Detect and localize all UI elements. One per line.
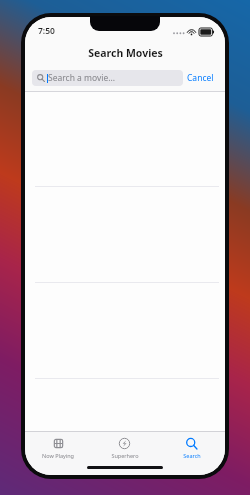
staticText: 7:50 xyxy=(38,25,55,37)
button[interactable]: Superhero xyxy=(91,432,158,463)
staticText: Search xyxy=(183,452,201,459)
staticText: Cancel xyxy=(187,72,214,84)
staticText: Search a movie... xyxy=(48,72,116,84)
staticText: Superhero xyxy=(111,452,139,459)
button[interactable]: Now Playing xyxy=(25,432,91,463)
staticText: Now Playing xyxy=(42,452,74,459)
staticText: Search Movies xyxy=(88,46,163,60)
button[interactable]: Search a movie... xyxy=(32,70,183,86)
button[interactable]: Search xyxy=(158,432,225,463)
button[interactable]: Cancel xyxy=(183,68,218,88)
